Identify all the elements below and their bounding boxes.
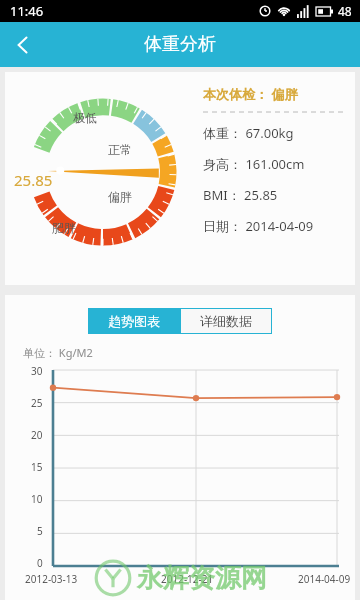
staticText: 5: [37, 524, 43, 538]
staticText: 48: [338, 3, 352, 19]
staticText: 10: [31, 492, 43, 506]
button[interactable]: Back: [0, 22, 46, 67]
staticText: 25: [31, 396, 43, 410]
staticText: 2012-03-13: [25, 572, 78, 586]
staticText: 日期： 2014-04-09: [203, 217, 314, 235]
staticText: 11:46: [10, 2, 44, 20]
staticText: 永辉资源网: [137, 562, 267, 595]
staticText: 2014-04-09: [298, 572, 351, 586]
staticText: 30: [31, 364, 43, 378]
staticText: 身高： 161.00cm: [203, 155, 305, 173]
staticText: 单位： Kg/M2: [23, 345, 93, 360]
staticText: 20: [31, 428, 43, 442]
staticText: 2012-12-21: [161, 572, 214, 586]
staticText: 极低: [73, 110, 97, 125]
staticText: BMI： 25.85: [203, 186, 278, 204]
staticText: 25.85: [14, 170, 53, 190]
staticText: 正常: [108, 142, 132, 157]
staticText: 趋势图表: [108, 313, 160, 329]
staticText: 本次体检： 偏胖: [203, 85, 298, 103]
button[interactable]: 趋势图表: [88, 308, 180, 334]
staticText: 15: [31, 460, 43, 474]
staticText: 详细数据: [200, 313, 252, 329]
staticText: 偏胖: [108, 189, 132, 204]
staticText: 体重： 67.00kg: [203, 124, 294, 142]
button[interactable]: 详细数据: [180, 308, 272, 334]
staticText: 体重分析: [144, 33, 216, 56]
staticText: 肥胖: [52, 220, 76, 235]
staticText: 0: [37, 556, 43, 570]
